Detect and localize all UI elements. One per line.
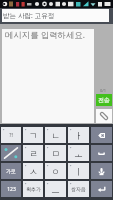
staticText: 가로 [6, 168, 16, 174]
button[interactable]: 전송 [96, 94, 112, 106]
staticText: ?! [9, 132, 13, 139]
button[interactable]: ?! [1, 127, 21, 143]
button[interactable]: 123 [1, 181, 21, 197]
button[interactable]: ㅁ [45, 145, 66, 161]
button[interactable]: Attach file [96, 109, 112, 123]
button[interactable]: 획추가 [23, 181, 43, 197]
button[interactable]: ㅏ [68, 127, 89, 143]
staticText: ㅇ [51, 166, 60, 177]
staticText: 123 [7, 186, 16, 193]
staticText: ㅗ [74, 148, 83, 159]
staticText: 전송 [98, 96, 110, 104]
button[interactable]: 쌍자음 [68, 181, 89, 197]
staticText: ㅁ [51, 148, 60, 159]
staticText: ㅏ [74, 130, 83, 141]
staticText: ㄱ [29, 130, 38, 141]
button[interactable] [91, 163, 112, 179]
button[interactable] [91, 145, 112, 161]
button[interactable]: 받는 사람: 고유정 [2, 9, 109, 22]
button[interactable]: ㄴ [45, 127, 66, 143]
button[interactable]: ㅡ [45, 181, 66, 197]
button[interactable]: ㅇ [45, 163, 66, 179]
staticText: ㅅ [29, 166, 38, 177]
button[interactable]: 가로 [1, 163, 21, 179]
button[interactable]: 메시지를 입력하세요. [2, 29, 94, 123]
button[interactable] [1, 145, 21, 161]
button[interactable] [91, 127, 112, 143]
button[interactable] [91, 181, 112, 197]
staticText: ㄹ [29, 148, 38, 159]
staticText: ㄴ [51, 130, 60, 141]
staticText: 획추가 [26, 186, 41, 192]
staticText: 받는 사람: 고유정 [3, 11, 55, 20]
button[interactable]: ㅗ [68, 145, 89, 161]
staticText: 메시지를 입력하세요. [5, 29, 85, 40]
staticText: 쌍자음 [71, 186, 86, 192]
staticText: ㅣ [74, 166, 83, 177]
button[interactable]: ㅅ [23, 163, 43, 179]
staticText: 0/1 [100, 88, 107, 93]
button[interactable]: ㄹ [23, 145, 43, 161]
staticText: ㅡ [51, 184, 60, 195]
button[interactable]: ㄱ [23, 127, 43, 143]
button[interactable]: ㅣ [68, 163, 89, 179]
